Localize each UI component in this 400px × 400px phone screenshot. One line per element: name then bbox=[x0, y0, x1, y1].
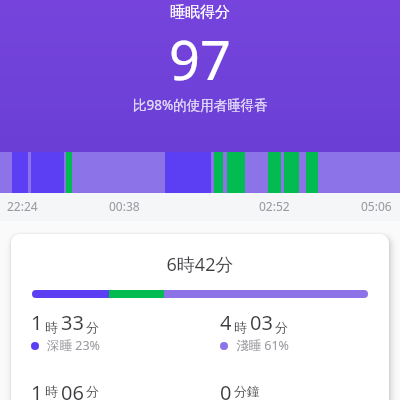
staticText: 1 bbox=[31, 379, 43, 400]
staticText: 分 bbox=[275, 319, 288, 335]
button[interactable]: 1 bbox=[31, 309, 200, 354]
staticText: 時 bbox=[234, 319, 247, 335]
staticText: 05:06 bbox=[361, 198, 392, 214]
staticText: 6時42分 bbox=[11, 252, 389, 277]
staticText: 時 bbox=[45, 319, 58, 335]
button[interactable]: 4 bbox=[220, 309, 389, 354]
staticText: 06 bbox=[61, 379, 84, 400]
staticText: 22:24 bbox=[7, 198, 38, 214]
staticText: 1 bbox=[31, 309, 43, 336]
staticText: 分 bbox=[86, 383, 99, 399]
staticText: 比98%的使用者睡得香 bbox=[133, 96, 268, 114]
button[interactable]: 睡眠得分 bbox=[0, 0, 400, 152]
staticText: 深睡 23% bbox=[47, 337, 100, 354]
staticText: 分鐘 bbox=[234, 383, 260, 399]
staticText: 睡眠得分 bbox=[170, 3, 230, 22]
button[interactable]: 0 bbox=[220, 379, 389, 400]
staticText: 03 bbox=[250, 309, 273, 336]
button[interactable]: 1 bbox=[31, 379, 200, 400]
staticText: 33 bbox=[61, 309, 84, 336]
staticText: 淺睡 61% bbox=[236, 337, 289, 354]
staticText: 4 bbox=[220, 309, 232, 336]
staticText: 時 bbox=[45, 383, 58, 399]
staticText: 分 bbox=[86, 319, 99, 335]
staticText: 0 bbox=[220, 379, 232, 400]
button[interactable] bbox=[0, 152, 400, 193]
staticText: 00:38 bbox=[109, 198, 140, 214]
staticText: 02:52 bbox=[259, 198, 290, 214]
staticText: 97 bbox=[169, 22, 231, 96]
button[interactable]: 6時42分 bbox=[11, 234, 389, 400]
